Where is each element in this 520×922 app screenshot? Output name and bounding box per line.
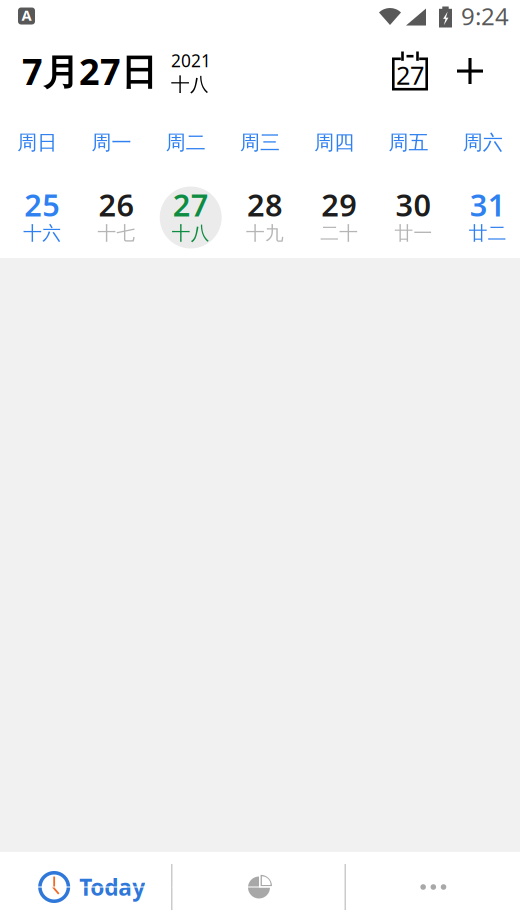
- button[interactable]: 26: [79, 181, 154, 253]
- staticText: 周五: [389, 130, 429, 155]
- button[interactable]: 29: [302, 181, 376, 253]
- staticText: 29: [321, 184, 357, 225]
- button[interactable]: 30: [376, 181, 451, 253]
- button[interactable]: Statistics: [173, 852, 347, 922]
- staticText: 周六: [463, 130, 503, 155]
- button[interactable]: Today: [380, 41, 440, 101]
- staticText: 二十: [320, 222, 358, 245]
- staticText: 周日: [17, 130, 57, 155]
- button[interactable]: 28: [228, 181, 302, 253]
- button[interactable]: More: [347, 852, 520, 922]
- staticText: 26: [98, 184, 134, 225]
- staticText: 十七: [97, 222, 135, 245]
- staticText: 周三: [240, 130, 280, 155]
- button[interactable]: 25: [5, 181, 79, 253]
- staticText: 27: [396, 58, 424, 92]
- staticText: 周二: [166, 130, 206, 155]
- staticText: Today: [79, 872, 145, 902]
- staticText: 27: [173, 184, 209, 225]
- button[interactable]: 27: [154, 181, 228, 253]
- staticText: 31: [470, 184, 506, 225]
- staticText: 廿一: [395, 222, 433, 245]
- staticText: 周四: [314, 130, 354, 155]
- staticText: 30: [396, 184, 432, 225]
- staticText: 25: [24, 184, 60, 225]
- staticText: 十八: [172, 222, 210, 245]
- staticText: 十九: [246, 222, 284, 245]
- button[interactable]: Add event: [440, 41, 500, 101]
- staticText: 周一: [91, 130, 131, 155]
- staticText: 2021: [171, 49, 211, 72]
- button[interactable]: 31: [451, 181, 520, 253]
- staticText: 廿二: [469, 222, 507, 245]
- staticText: 十六: [23, 222, 61, 245]
- staticText: 7月27日: [22, 47, 157, 95]
- staticText: A: [21, 5, 31, 25]
- staticText: 9:24: [461, 0, 509, 32]
- button[interactable]: Today: [0, 852, 173, 922]
- staticText: 十八: [171, 73, 209, 96]
- staticText: 28: [247, 184, 283, 225]
